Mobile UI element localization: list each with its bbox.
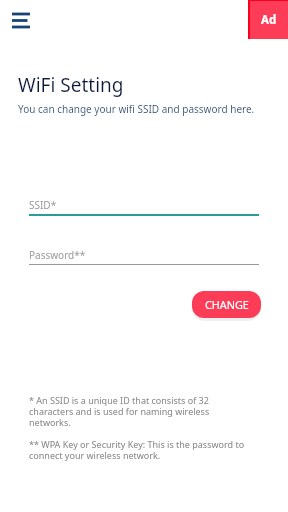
staticText: Ad [261,12,277,28]
staticText: * An SSID is a unique ID that consists o… [29,394,245,429]
staticText: SSID* [29,198,57,212]
staticText: Password** [29,248,86,262]
staticText: CHANGE [205,297,249,312]
staticText: WiFi Setting [18,72,124,98]
button[interactable]: CHANGE [192,291,261,318]
staticText: You can change your wifi SSID and passwo… [18,102,255,116]
button[interactable]: SSID* [29,198,259,218]
staticText: ** WPA Key or Security Key: This is the … [29,438,245,462]
button[interactable]: Menu [4,3,38,37]
button[interactable]: Ad [248,0,288,39]
button[interactable]: Password** [29,248,259,268]
